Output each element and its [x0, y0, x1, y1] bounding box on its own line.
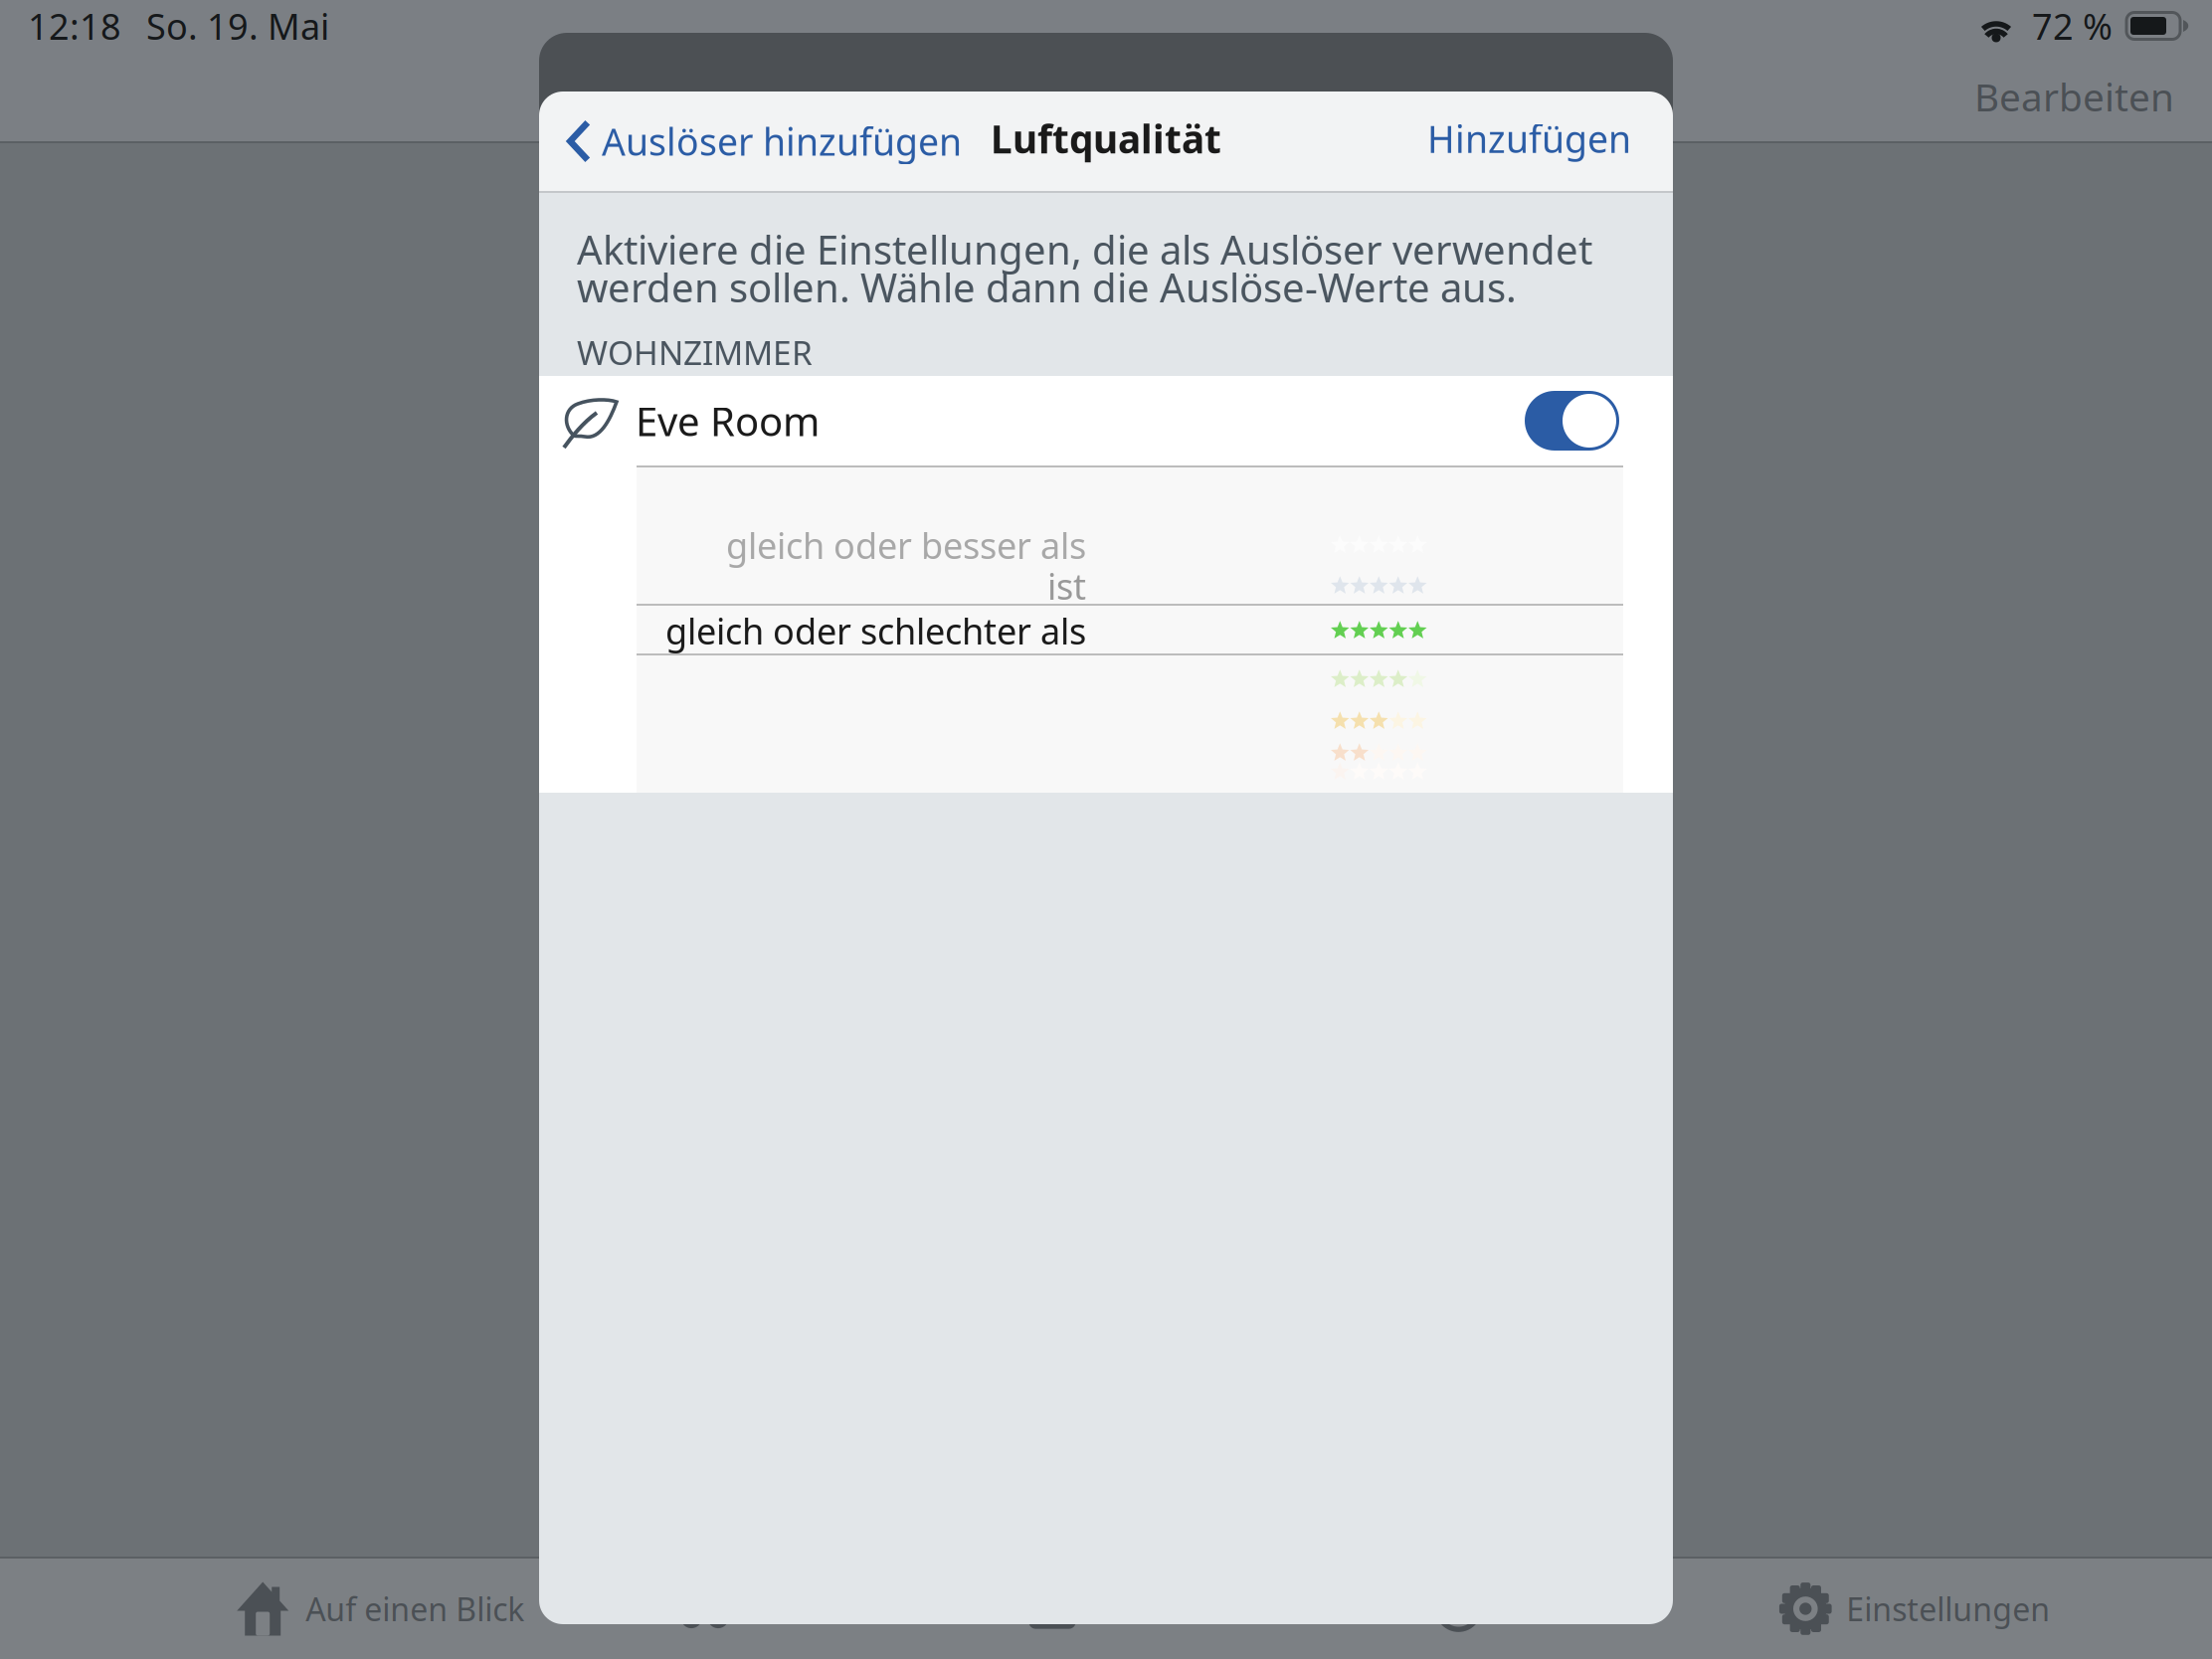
staticText: So. 19. Mai — [146, 2, 329, 50]
staticText: Eve Room — [636, 394, 820, 447]
button[interactable]: Hinzufügen — [1427, 86, 1673, 191]
staticText: Kameras — [1499, 1588, 1631, 1630]
button[interactable]: Automation — [956, 1559, 1339, 1659]
staticText: Automation — [1093, 1588, 1270, 1630]
button[interactable]: Räume — [572, 1559, 956, 1659]
staticText: ist — [1047, 562, 1086, 610]
staticText: Hinzufügen — [1427, 114, 1631, 163]
staticText: Aktiviere die Einstellungen, die als Aus… — [577, 223, 1592, 276]
button[interactable]: Einstellungen — [1722, 1559, 2106, 1659]
staticText: Bearbeiten — [1974, 71, 2174, 122]
staticText: Auslöser hinzufügen — [602, 117, 962, 166]
staticText: Einstellungen — [1846, 1588, 2050, 1630]
button[interactable]: Bearbeiten — [1974, 55, 2212, 138]
staticText: 12:18 — [28, 2, 121, 50]
staticText: Auf einen Blick — [306, 1588, 524, 1630]
button[interactable]: Zurück zu Auslöser hinzufügen — [539, 89, 962, 194]
button[interactable]: Kameras — [1339, 1559, 1722, 1659]
staticText: WOHNZIMMER — [577, 330, 813, 374]
staticText: 72 % — [2032, 2, 2113, 50]
staticText: werden sollen. Wähle dann die Auslöse-We… — [577, 261, 1517, 313]
button[interactable]: Eve Room als Auslöser verwenden — [1525, 376, 1673, 465]
staticText: Räume — [746, 1588, 851, 1630]
button[interactable]: Auf einen Blick — [189, 1559, 572, 1659]
staticText: Luftqualität — [991, 113, 1221, 164]
staticText: gleich oder besser als — [726, 521, 1086, 569]
staticText: gleich oder schlechter als — [665, 607, 1086, 654]
